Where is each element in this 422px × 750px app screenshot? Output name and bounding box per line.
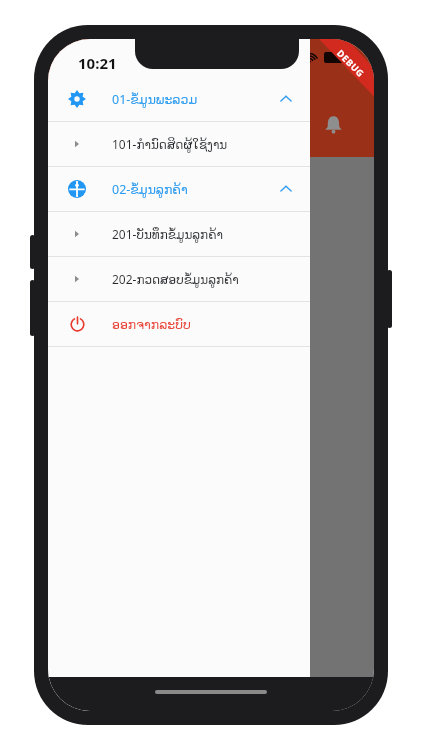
button[interactable]: Notifications xyxy=(316,107,350,141)
button[interactable]: ອອກຈາກລະບົບ xyxy=(48,302,310,346)
staticText: 201-ບັນທຶກຂໍ້ມູນລູກຄ້າ xyxy=(112,226,223,242)
staticText: 202-ກວດສອບຂໍ້ມູນລູກຄ້າ xyxy=(112,271,239,287)
staticText: ອອກຈາກລະບົບ xyxy=(112,317,191,332)
button[interactable]: 202-ກວດສອບຂໍ້ມູນລູກຄ້າ xyxy=(48,257,310,301)
staticText: 02-ຂໍ້ມູນລູກຄ້າ xyxy=(112,181,188,198)
button[interactable]: 201-ບັນທຶກຂໍ້ມູນລູກຄ້າ xyxy=(48,212,310,256)
staticText: 101-ກຳນົດສິດຜູ້ໃຊ້ງານ xyxy=(112,136,228,152)
button[interactable]: 101-ກຳນົດສິດຜູ້ໃຊ້ງານ xyxy=(48,122,310,166)
button[interactable]: 01-ຂໍ້ມູນພະລວມ xyxy=(48,77,310,121)
staticText: 01-ຂໍ້ມູນພະລວມ xyxy=(112,91,198,108)
staticText: 10:21 xyxy=(78,53,117,73)
button[interactable]: 02-ຂໍ້ມູນລູກຄ້າ xyxy=(48,167,310,211)
staticText: DEBUG xyxy=(335,47,367,79)
